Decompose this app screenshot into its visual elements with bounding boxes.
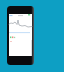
button[interactable] <box>9 14 32 56</box>
